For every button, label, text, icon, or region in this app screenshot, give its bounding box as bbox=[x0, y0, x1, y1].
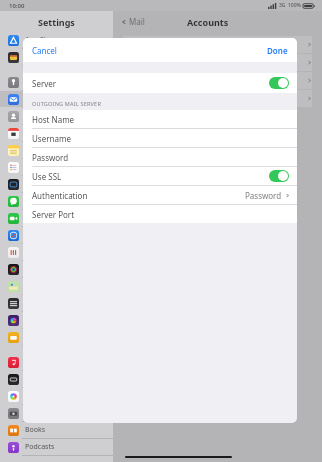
staticText: Contacts bbox=[25, 111, 54, 121]
staticText: 10:00 bbox=[9, 2, 25, 10]
button[interactable]: Shortcuts bbox=[0, 295, 113, 311]
staticText: Podcasts bbox=[25, 442, 55, 452]
button[interactable]: TV bbox=[0, 371, 113, 387]
button[interactable]: News bbox=[0, 244, 113, 260]
staticText: 100% bbox=[288, 2, 301, 9]
staticText: Settings bbox=[38, 16, 75, 28]
staticText: 3G bbox=[279, 2, 286, 9]
staticText: Books bbox=[25, 425, 46, 435]
button[interactable]: Server Port bbox=[23, 205, 297, 223]
button[interactable]: Passwords bbox=[0, 74, 113, 90]
button[interactable]: FaceTime bbox=[0, 210, 113, 226]
button[interactable]: Photos2 bbox=[0, 312, 113, 328]
staticText: App Store bbox=[25, 35, 58, 45]
button[interactable]: Mail bbox=[0, 91, 113, 107]
button[interactable]: Podcasts bbox=[0, 439, 113, 455]
button[interactable]: Files bbox=[0, 329, 113, 345]
staticText: Wallet bbox=[25, 52, 46, 62]
staticText: Username bbox=[32, 133, 71, 144]
button[interactable]: Books bbox=[0, 422, 113, 438]
button[interactable]: Calendar bbox=[0, 125, 113, 141]
staticText: Password bbox=[32, 152, 69, 163]
staticText: OUTGOING MAIL SERVER bbox=[32, 100, 101, 107]
staticText: Freeform bbox=[25, 179, 56, 189]
button[interactable]: Host Name bbox=[23, 110, 297, 129]
button[interactable]: Notes bbox=[0, 142, 113, 158]
button[interactable]: Messages bbox=[0, 193, 113, 209]
staticText: Reminders bbox=[25, 162, 61, 172]
button[interactable]: Use SSL bbox=[23, 167, 297, 186]
other: Back bbox=[121, 19, 127, 25]
staticText: Use SSL bbox=[32, 171, 62, 182]
button[interactable]: Music bbox=[0, 354, 113, 370]
staticText: Passwords bbox=[25, 77, 61, 87]
button[interactable]: Photos bbox=[0, 388, 113, 404]
button[interactable]: Fitness bbox=[0, 261, 113, 277]
button[interactable]: Freeform bbox=[0, 176, 113, 192]
staticText: Mail bbox=[129, 16, 145, 27]
staticText: Done bbox=[267, 45, 288, 56]
button[interactable]: Contacts bbox=[0, 108, 113, 124]
staticText: Password bbox=[245, 190, 282, 201]
button[interactable]: App Store bbox=[0, 32, 113, 48]
staticText: Notes bbox=[25, 145, 45, 155]
staticText: Cancel bbox=[32, 45, 57, 56]
staticText: Server bbox=[32, 78, 57, 89]
button[interactable]: Server enabled bbox=[269, 77, 289, 89]
staticText: Authentication bbox=[32, 190, 88, 201]
staticText: Calendar bbox=[25, 128, 55, 138]
staticText: Server Port bbox=[32, 209, 75, 220]
staticText: Host Name bbox=[32, 114, 75, 125]
button[interactable]: Maps bbox=[0, 278, 113, 294]
button[interactable]: Done bbox=[258, 41, 297, 60]
staticText: Messages bbox=[25, 196, 58, 206]
staticText: Accounts bbox=[187, 16, 229, 28]
button[interactable]: Cancel bbox=[23, 41, 66, 60]
button[interactable]: Reminders bbox=[0, 159, 113, 175]
button[interactable]: Camera bbox=[0, 405, 113, 421]
button[interactable]: Back bbox=[121, 16, 145, 27]
staticText: FaceTime bbox=[25, 213, 57, 223]
button[interactable]: Authentication bbox=[23, 186, 297, 205]
button[interactable]: Password bbox=[23, 148, 297, 167]
button[interactable]: Username bbox=[23, 129, 297, 148]
staticText: Mail bbox=[25, 94, 39, 104]
button[interactable]: Wallet bbox=[0, 49, 113, 65]
button[interactable]: Safari bbox=[0, 227, 113, 243]
